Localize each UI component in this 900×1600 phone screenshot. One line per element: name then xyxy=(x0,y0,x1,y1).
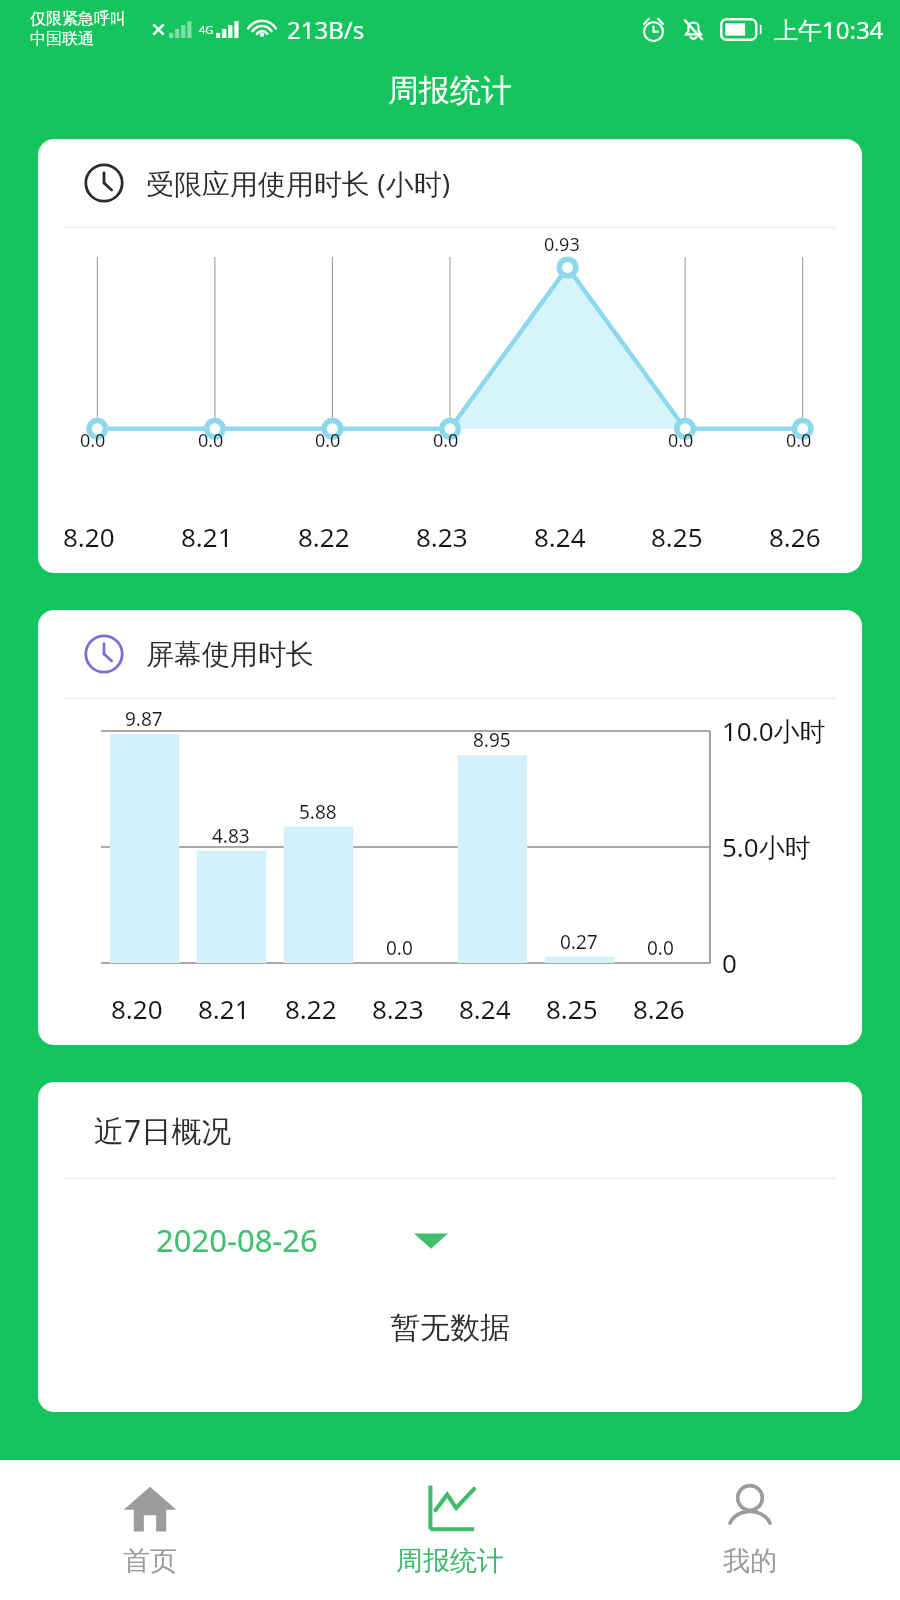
staticText: 0.0 xyxy=(433,428,459,453)
staticText: 0.93 xyxy=(544,232,580,257)
staticText: 中国联通 xyxy=(30,29,94,49)
staticText: 8.25 xyxy=(546,991,598,1026)
staticText: 0.0 xyxy=(80,428,106,453)
staticText: 8.21 xyxy=(198,991,250,1026)
staticText: 0.27 xyxy=(560,929,598,955)
staticText: 0.0 xyxy=(315,428,341,453)
staticText: 8.26 xyxy=(769,519,821,554)
staticText: 4G xyxy=(199,22,214,37)
staticText: 8.24 xyxy=(534,519,586,554)
staticText: 8.95 xyxy=(473,727,511,753)
staticText: 8.20 xyxy=(63,519,115,554)
staticText: 2020-08-26 xyxy=(156,1219,318,1261)
staticText: 首页 xyxy=(123,1544,177,1578)
button[interactable]: 周报统计 xyxy=(300,1460,600,1600)
staticText: 受限应用使用时长 (小时) xyxy=(146,164,451,202)
staticText: 5.0小时 xyxy=(722,829,811,865)
staticText: 8.21 xyxy=(181,519,233,554)
staticText: 8.24 xyxy=(459,991,511,1026)
staticText: 我的 xyxy=(723,1544,777,1578)
staticText: 上午10:34 xyxy=(774,13,884,46)
staticText: 0.0 xyxy=(647,935,674,961)
staticText: 5.88 xyxy=(299,799,337,825)
staticText: 仅限紧急呼叫 xyxy=(30,9,126,29)
button[interactable]: 2020-08-26 xyxy=(156,1219,448,1261)
other: 首页 xyxy=(122,1480,178,1536)
staticText: 0.0 xyxy=(668,428,694,453)
staticText: 213B/s xyxy=(287,13,365,46)
staticText: 0.0 xyxy=(786,428,812,453)
other: 周报统计 xyxy=(422,1480,478,1536)
button[interactable]: 我的 xyxy=(600,1460,900,1600)
button[interactable]: 首页 xyxy=(0,1460,300,1600)
staticText: 周报统计 xyxy=(396,1544,504,1578)
staticText: 8.22 xyxy=(298,519,350,554)
staticText: 8.23 xyxy=(416,519,468,554)
staticText: 10.0小时 xyxy=(722,713,826,749)
staticText: 8.26 xyxy=(633,991,685,1026)
staticText: 0 xyxy=(722,945,737,980)
other: 我的 xyxy=(722,1480,778,1536)
staticText: 0.0 xyxy=(386,935,413,961)
staticText: 近7日概况 xyxy=(94,1110,232,1151)
staticText: 0.0 xyxy=(198,428,224,453)
staticText: 8.22 xyxy=(285,991,337,1026)
staticText: 8.20 xyxy=(111,991,163,1026)
staticText: 8.23 xyxy=(372,991,424,1026)
staticText: 4.83 xyxy=(212,823,250,849)
staticText: 屏幕使用时长 xyxy=(146,637,314,672)
staticText: 9.87 xyxy=(125,706,163,732)
staticText: 8.25 xyxy=(651,519,703,554)
staticText: 暂无数据 xyxy=(390,1309,510,1347)
staticText: 周报统计 xyxy=(388,71,512,110)
